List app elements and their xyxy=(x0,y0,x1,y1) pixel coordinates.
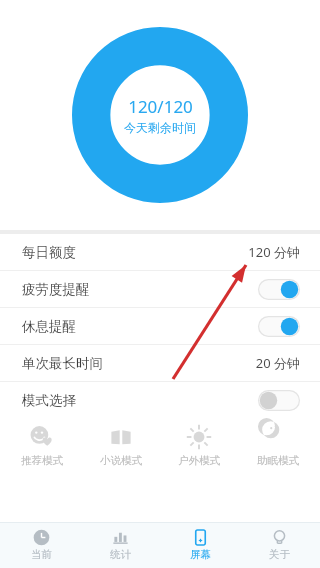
staticText: 关于 xyxy=(269,548,290,561)
staticText: 单次最长时间 xyxy=(22,355,103,372)
button[interactable]: 推荐模式 xyxy=(5,424,79,467)
button[interactable]: Toggle on xyxy=(258,316,300,337)
button[interactable]: 助眠模式 xyxy=(241,424,315,467)
staticText: 小说模式 xyxy=(100,454,142,467)
button[interactable]: 统计 xyxy=(81,529,159,561)
button[interactable]: 模式选择 xyxy=(0,382,320,418)
staticText: 模式选择 xyxy=(22,392,76,409)
button[interactable]: 当前 xyxy=(2,529,80,561)
staticText: 120 分钟 xyxy=(248,243,300,261)
staticText: 疲劳度提醒 xyxy=(22,281,90,298)
staticText: 统计 xyxy=(110,548,131,561)
button[interactable]: 户外模式 xyxy=(162,424,236,467)
button[interactable]: Toggle on xyxy=(258,279,300,300)
staticText: 当前 xyxy=(31,548,52,561)
button[interactable]: 屏幕 xyxy=(161,529,239,561)
button[interactable]: 单次最长时间 xyxy=(0,345,320,381)
button[interactable]: 休息提醒 xyxy=(0,308,320,344)
button[interactable]: Toggle off xyxy=(258,390,300,411)
staticText: 户外模式 xyxy=(178,454,220,467)
staticText: 推荐模式 xyxy=(21,454,63,467)
staticText: 20 分钟 xyxy=(255,354,300,372)
staticText: 120/120 xyxy=(128,95,193,118)
staticText: 助眠模式 xyxy=(257,454,299,467)
staticText: 屏幕 xyxy=(190,548,211,561)
button[interactable]: 疲劳度提醒 xyxy=(0,271,320,307)
staticText: 今天剩余时间 xyxy=(124,120,196,135)
button[interactable]: 小说模式 xyxy=(84,424,158,467)
button[interactable]: 每日额度 xyxy=(0,234,320,270)
staticText: 休息提醒 xyxy=(22,318,76,335)
staticText: 每日额度 xyxy=(22,244,76,261)
button[interactable]: 关于 xyxy=(240,529,318,561)
